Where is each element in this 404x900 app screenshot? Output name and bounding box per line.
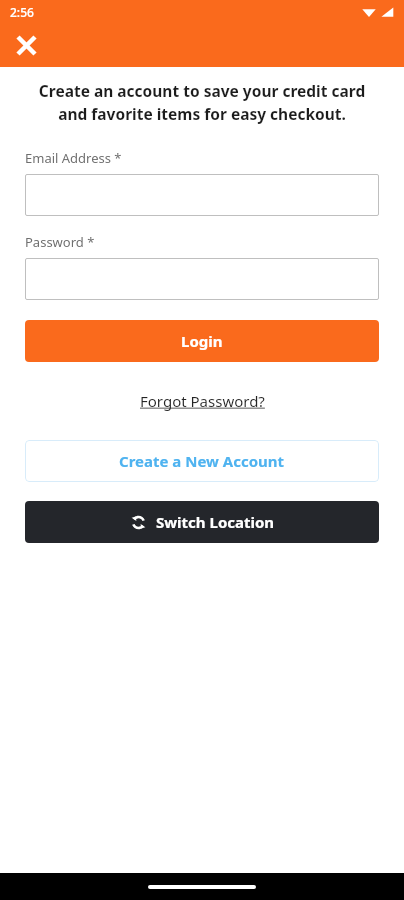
button[interactable]: [25, 174, 379, 216]
button[interactable]: Switch Location: [25, 501, 379, 543]
staticText: Forgot Password?: [140, 391, 265, 411]
button[interactable]: Login: [25, 320, 379, 362]
staticText: Email Address *: [25, 149, 122, 167]
staticText: Create an account to save your credit ca…: [25, 80, 379, 125]
button[interactable]: Forgot Password?: [134, 387, 271, 415]
staticText: Switch Location: [156, 512, 275, 532]
staticText: Password *: [25, 233, 95, 251]
staticText: Login: [181, 331, 223, 351]
button[interactable]: Create a New Account: [25, 440, 379, 482]
button[interactable]: [25, 258, 379, 300]
staticText: 2:56: [10, 4, 34, 20]
button[interactable]: Close: [11, 30, 41, 60]
staticText: Create a New Account: [119, 451, 285, 471]
